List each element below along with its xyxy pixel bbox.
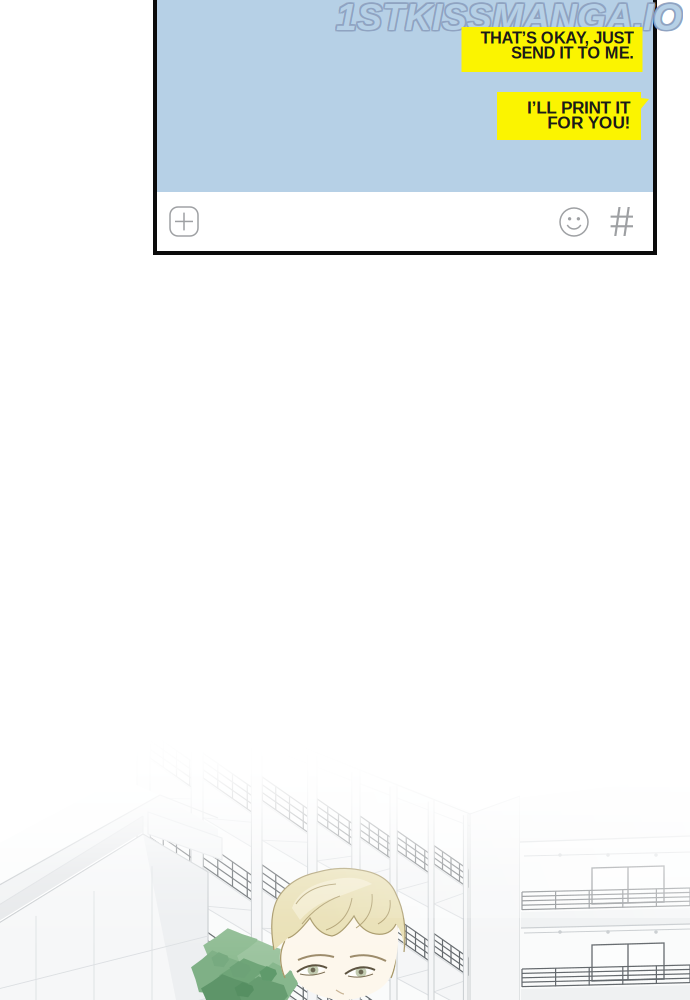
button[interactable]: Hashtag — [610, 207, 633, 236]
staticText: 1STKISSMANGA.IO — [335, 0, 681, 39]
staticText: FOR YOU! — [540, 112, 630, 133]
staticText: 1STKISSMANGA.IO — [336, 0, 682, 39]
staticText: 1STKISSMANGA.IO — [336, 0, 682, 38]
button[interactable]: Add attachment — [170, 207, 198, 236]
staticText: 1STKISSMANGA.IO — [337, 0, 683, 38]
staticText: 1STKISSMANGA.IO — [335, 0, 681, 36]
staticText: 1STKISSMANGA.IO — [336, 0, 682, 36]
staticText: SEND IT TO ME. — [493, 42, 633, 63]
staticText: THAT’S OKAY, JUST — [458, 27, 633, 48]
staticText: I’LL PRINT IT — [518, 97, 630, 118]
staticText: 1STKISSMANGA.IO — [335, 0, 681, 38]
staticText: 1STKISSMANGA.IO — [337, 0, 683, 36]
button[interactable]: Emoji — [560, 208, 588, 236]
staticText: 1STKISSMANGA.IO — [337, 0, 683, 39]
